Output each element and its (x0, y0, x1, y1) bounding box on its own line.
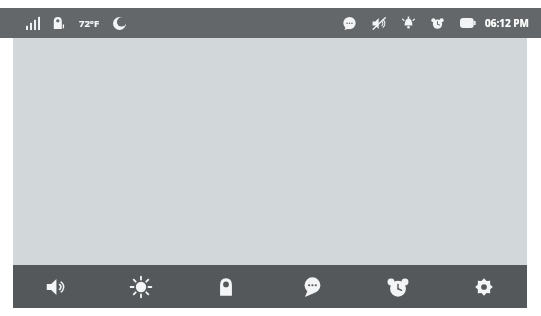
button[interactable]: Camera (183, 265, 269, 308)
button[interactable]: Settings (441, 265, 527, 308)
staticText: 06:12 PM (485, 16, 529, 30)
button[interactable]: Alarm (355, 265, 441, 308)
button[interactable]: Volume (13, 265, 98, 308)
button[interactable]: Brightness (98, 265, 183, 308)
button[interactable]: Talk (269, 265, 355, 308)
staticText: 72°F (79, 17, 100, 30)
